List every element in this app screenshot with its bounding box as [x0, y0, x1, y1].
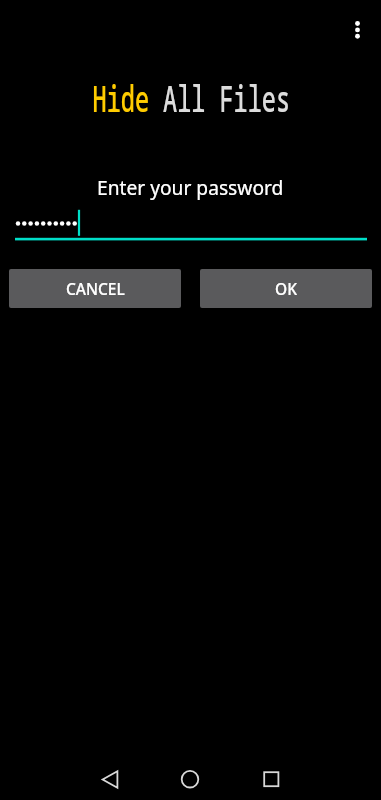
- button[interactable]: CANCEL: [9, 269, 181, 308]
- button[interactable]: Password field: [0, 205, 381, 245]
- staticText: OK: [275, 278, 297, 299]
- staticText: Enter your password: [97, 174, 284, 200]
- button[interactable]: More options: [333, 6, 381, 54]
- button[interactable]: Home: [166, 755, 214, 800]
- button[interactable]: Recent apps: [247, 755, 295, 800]
- button[interactable]: Back: [85, 755, 133, 800]
- button[interactable]: OK: [200, 269, 372, 308]
- staticText: CANCEL: [66, 278, 125, 299]
- staticText: Hide All Files: [93, 74, 290, 123]
